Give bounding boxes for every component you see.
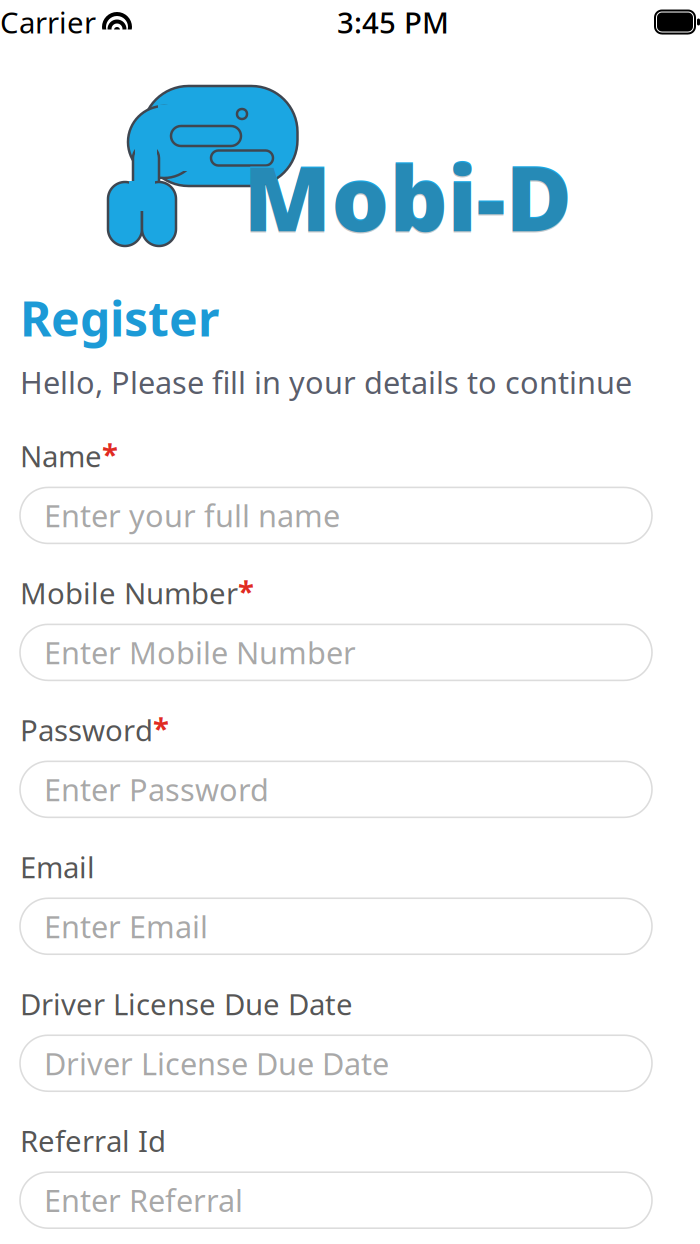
staticText: Carrier xyxy=(0,2,96,41)
staticText: * xyxy=(238,571,254,610)
staticText: Referral Id xyxy=(20,1121,166,1160)
staticText: Register xyxy=(20,286,219,350)
staticText: Mobi-D xyxy=(243,137,572,257)
staticText: 3:45 PM xyxy=(337,2,449,41)
staticText: Mobile Number xyxy=(20,573,238,612)
button[interactable]: Enter Referral xyxy=(20,1172,652,1228)
button[interactable]: Enter Password xyxy=(20,761,652,817)
staticText: Enter Mobile Number xyxy=(44,632,356,673)
staticText: Password xyxy=(20,710,153,749)
button[interactable]: Enter your full name xyxy=(20,487,652,543)
staticText: Enter Password xyxy=(44,769,269,810)
staticText: * xyxy=(102,434,118,473)
staticText: Driver License Due Date xyxy=(44,1043,389,1084)
staticText: Enter Referral xyxy=(44,1180,243,1220)
staticText: Name xyxy=(20,436,102,475)
staticText: Driver License Due Date xyxy=(20,984,353,1023)
button[interactable]: Driver License Due Date xyxy=(20,1035,652,1091)
button[interactable]: Enter Email xyxy=(20,898,652,954)
staticText: Enter your full name xyxy=(44,495,340,536)
staticText: * xyxy=(153,708,169,747)
button[interactable]: Enter Mobile Number xyxy=(20,624,652,680)
staticText: Mobi-D xyxy=(243,136,572,256)
staticText: Hello, Please fill in your details to co… xyxy=(20,362,632,402)
staticText: Email xyxy=(20,847,95,886)
staticText: Enter Email xyxy=(44,906,208,947)
